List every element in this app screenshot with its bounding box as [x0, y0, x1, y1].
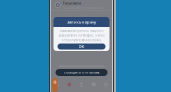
button[interactable]: ОК: [57, 43, 105, 49]
staticText: Ваша заявка принята. Настройте: [60, 29, 103, 32]
staticText: Главная: [54, 88, 61, 90]
button[interactable]: Чат: [88, 78, 100, 92]
staticText: Запись к врачу: [67, 19, 96, 25]
staticText: СООБЩИТЬ О ПРОБЛЕМЕ: [64, 71, 99, 74]
staticText: не пропустить запись к врачу.: [61, 38, 101, 42]
staticText: уведомления на телефон, чтобы: [58, 34, 104, 37]
button[interactable]: Услуги: [63, 78, 75, 92]
staticText: Госуслуги: [63, 0, 82, 6]
button[interactable]: Главная: [51, 78, 63, 92]
staticText: ОК: [78, 44, 84, 49]
button[interactable]: СООБЩИТЬ О ПРОБЛЕМЕ: [55, 69, 107, 76]
staticText: личный кабинет гражданина: [63, 6, 103, 10]
